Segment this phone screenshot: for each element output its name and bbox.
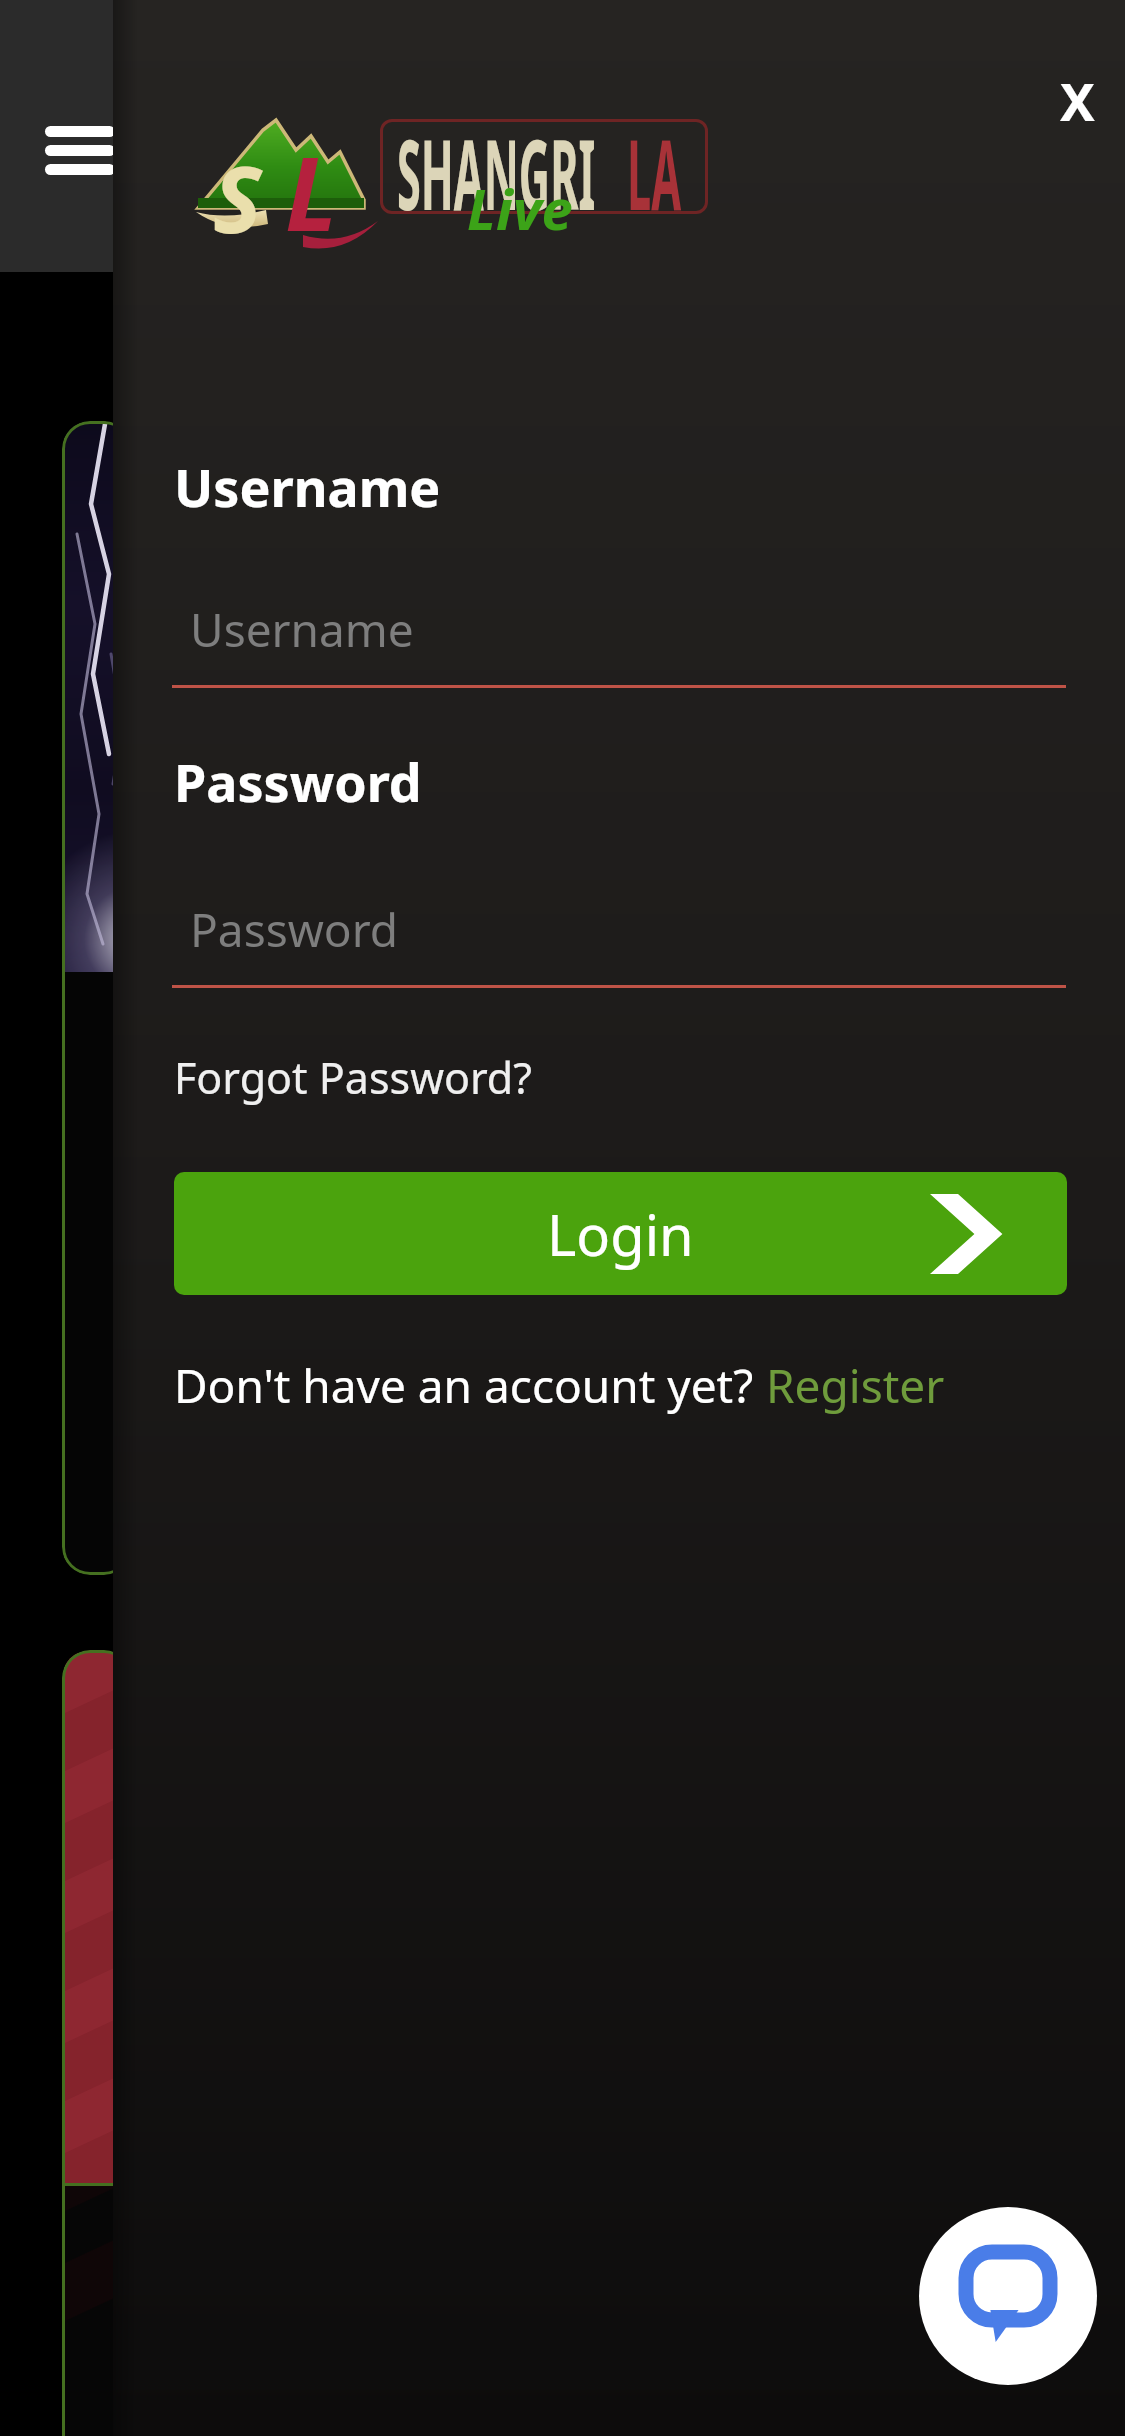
staticText: Live [467,170,573,246]
staticText: Username [190,598,414,661]
button[interactable] [919,2207,1097,2385]
button[interactable]: Don't have an account yet? [174,1354,945,1417]
button[interactable]: Password [172,880,1066,988]
staticText: Username [174,451,441,522]
staticText: Register [766,1354,945,1417]
button[interactable] [45,120,115,180]
staticText: S [213,135,262,260]
staticText: L [285,122,338,261]
staticText: Password [190,898,399,961]
staticText: Login [547,1196,694,1272]
staticText: X [1060,65,1095,136]
button[interactable]: Login [174,1172,1067,1295]
button[interactable]: Forgot Password? [174,1048,532,1107]
staticText: SHANGRI [397,107,595,238]
staticText: Don't have an account yet? [174,1354,766,1417]
button[interactable]: X [1040,60,1115,140]
staticText: LA [627,107,681,238]
staticText: Password [174,746,422,817]
button[interactable]: Username [172,580,1066,688]
